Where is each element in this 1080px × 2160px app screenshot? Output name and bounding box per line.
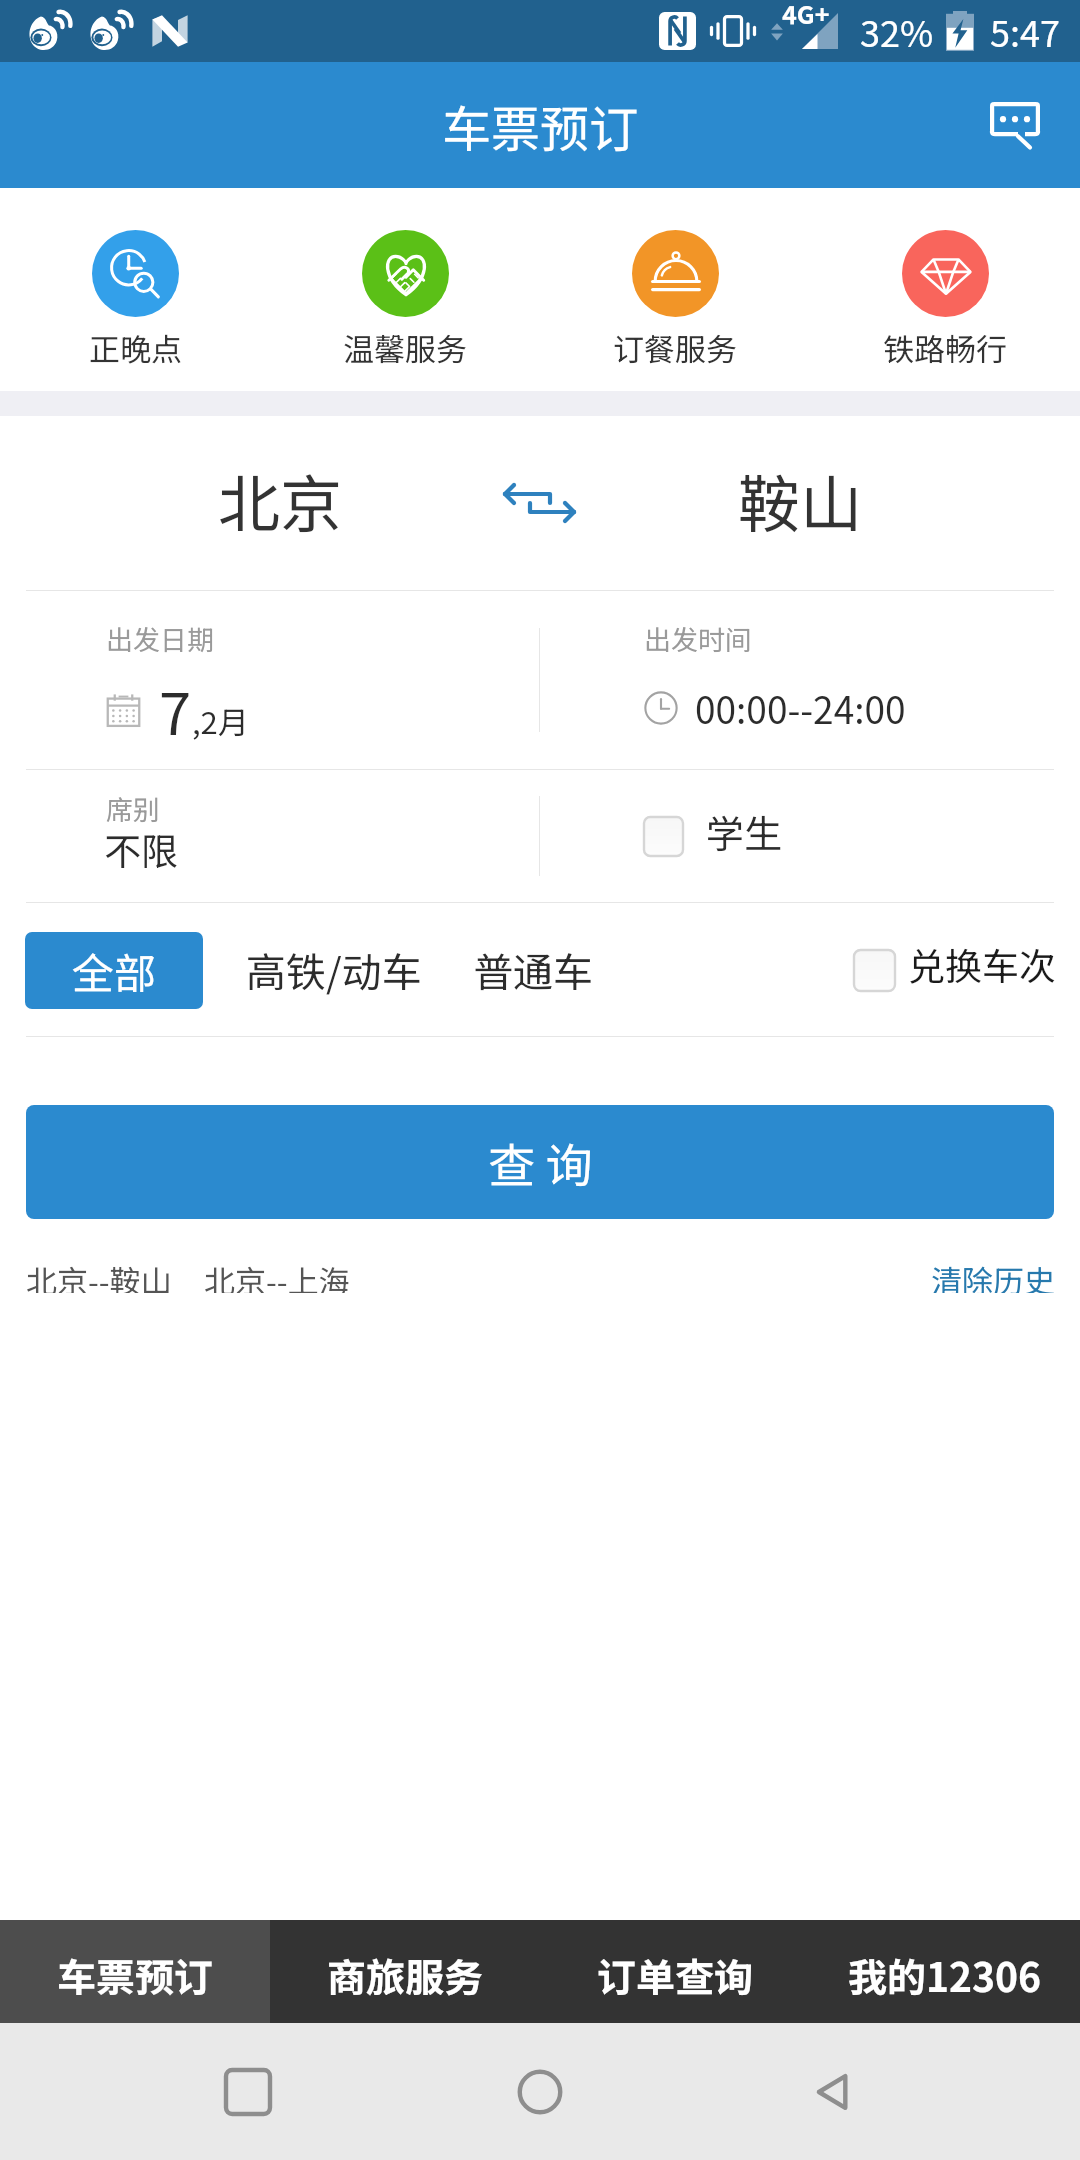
button[interactable]: 订餐服务 [540,188,810,391]
staticText: 商旅服务 [327,1947,484,2003]
button[interactable]: Swap departure and arrival [475,443,605,563]
button[interactable]: 普通车 [444,925,615,1015]
staticText: 00:00--24:00 [695,681,906,735]
button[interactable]: Home [495,2047,585,2137]
button[interactable]: 出发时间 [540,591,1080,769]
staticText: 订单查询 [597,1947,754,2003]
button[interactable]: Back [788,2047,878,2137]
staticText: 北京 [218,455,343,545]
staticText: 鞍山 [738,455,863,545]
staticText: 席别 [106,789,160,828]
staticText: 不限 [104,822,178,876]
button[interactable]: 铁路畅行 [810,188,1080,391]
button[interactable]: 席别 [0,770,539,902]
staticText: 5:47 [990,5,1060,57]
staticText: 高铁/动车 [246,941,422,999]
staticText: 出发日期 [106,619,214,658]
staticText: ,2月 [192,698,249,743]
button[interactable]: 兑换车次 [854,943,1080,997]
button[interactable]: Messages [972,82,1058,168]
staticText: 32% [860,5,934,57]
button[interactable]: 鞍山 [640,416,1080,590]
staticText: 正晚点 [89,325,182,370]
staticText: 车票预订 [442,90,639,161]
button[interactable]: 高铁/动车 [203,925,444,1015]
button[interactable]: 温馨服务 [270,188,540,391]
button[interactable]: 北京 [0,416,440,590]
staticText: 兑换车次 [908,937,1056,991]
staticText: 7 [159,668,192,752]
button[interactable]: 全部 [25,932,203,1009]
button[interactable]: 查 询 [26,1105,1054,1219]
staticText: 温馨服务 [343,325,467,370]
button[interactable]: 订单查询 [540,1920,810,2023]
button[interactable]: 学生 [540,770,1080,902]
button[interactable]: 正晚点 [0,188,270,391]
staticText: 订餐服务 [613,325,737,370]
button[interactable]: 北京--上海 [184,1249,362,1301]
staticText: 北京--鞍山 [26,1257,172,1293]
staticText: 全部 [72,940,157,1001]
staticText: 学生 [706,804,783,859]
staticText: 铁路畅行 [883,325,1007,370]
staticText: 4G+ [782,0,830,31]
staticText: 出发时间 [644,619,752,658]
button[interactable]: 北京--鞍山 [0,1249,184,1301]
staticText: 北京--上海 [204,1257,350,1293]
button[interactable]: 车票预订 [0,1920,270,2023]
button[interactable]: 商旅服务 [270,1920,540,2023]
staticText: 普通车 [473,941,593,999]
button[interactable]: 我的12306 [810,1920,1080,2023]
staticText: 查 询 [488,1128,593,1196]
button[interactable]: Recents [203,2047,293,2137]
button[interactable]: 清除历史 [915,1249,1080,1301]
button[interactable]: 出发日期 [0,591,539,769]
staticText: 清除历史 [931,1257,1055,1293]
staticText: 车票预订 [57,1947,214,2003]
staticText: 我的12306 [848,1947,1042,2003]
